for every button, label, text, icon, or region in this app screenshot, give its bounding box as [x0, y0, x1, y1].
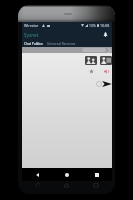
button[interactable]: Advertisement [22, 47, 112, 53]
staticText: Wirestar [24, 23, 39, 28]
button[interactable]: Send [102, 79, 112, 89]
staticText: 13% [89, 23, 96, 28]
staticText: 10:08 [100, 23, 110, 28]
button[interactable]: Sound [103, 68, 109, 74]
button[interactable]: Add [95, 80, 102, 87]
button[interactable]: Photo [100, 56, 112, 65]
button[interactable]: Favourite [88, 68, 94, 74]
button[interactable]: Universal Recursos [45, 40, 78, 47]
staticText: Sysnet [24, 32, 39, 38]
button[interactable]: Notifications [101, 30, 110, 39]
button[interactable]: Photo [85, 56, 97, 65]
button[interactable]: Chat Publico [22, 40, 45, 47]
staticText: Universal Recursos [47, 42, 76, 46]
staticText: Chat Publico [24, 42, 43, 46]
button[interactable]: Back [22, 168, 52, 181]
button[interactable]: Recents [82, 168, 112, 181]
button[interactable]: Home [52, 168, 82, 181]
